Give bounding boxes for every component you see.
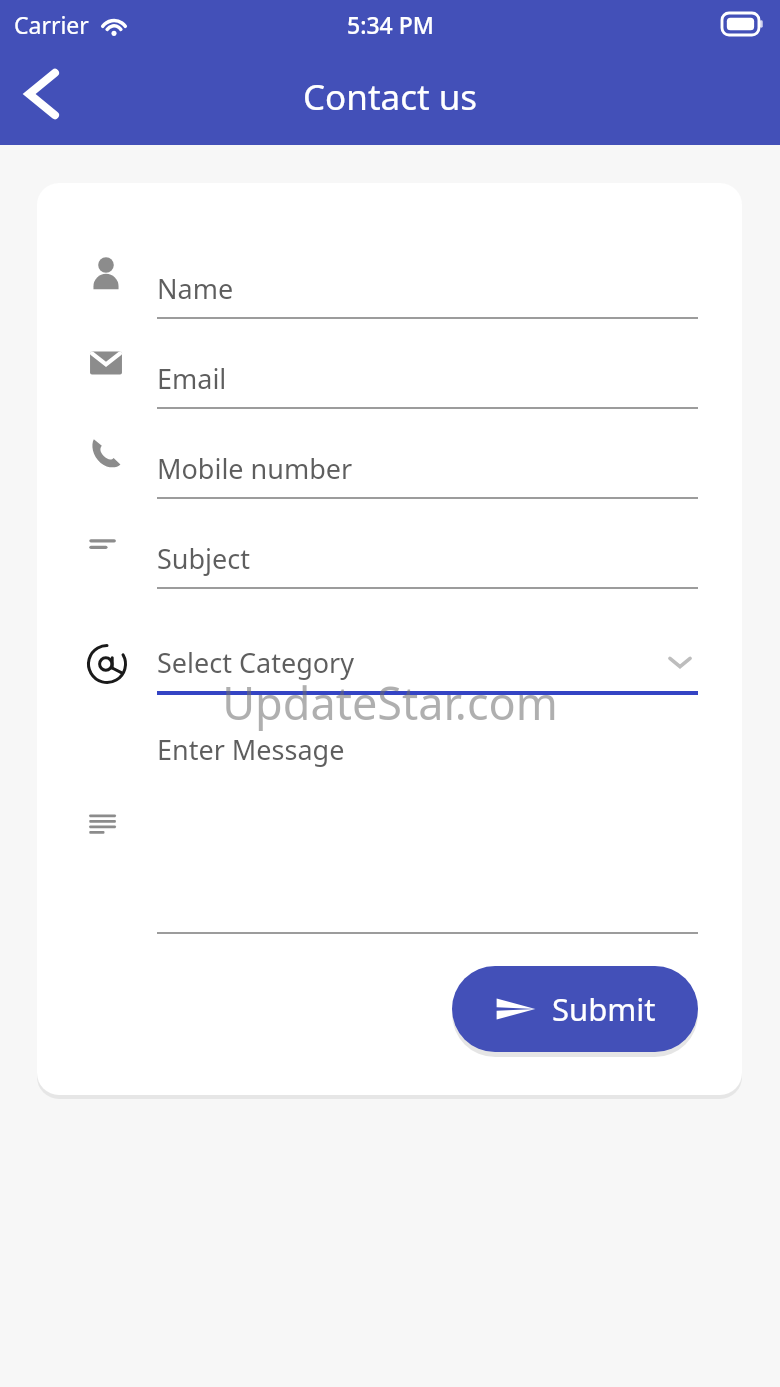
button[interactable]: Mobile number — [157, 432, 698, 504]
staticText: Contact us — [303, 73, 478, 121]
button[interactable]: Email — [157, 342, 698, 414]
staticText: Carrier — [14, 9, 89, 40]
staticText: UpdateStar.com — [0, 672, 780, 733]
button[interactable]: Back — [6, 58, 78, 130]
staticText: Submit — [552, 988, 656, 1030]
button[interactable]: Select Category — [157, 626, 698, 698]
button[interactable]: Name — [157, 252, 698, 324]
staticText: Mobile number — [157, 450, 353, 487]
staticText: Select Category — [157, 644, 355, 681]
staticText: Email — [157, 360, 227, 397]
button[interactable] — [157, 803, 698, 933]
staticText: Name — [157, 270, 234, 307]
staticText: Subject — [157, 540, 251, 577]
staticText: 5:34 PM — [347, 9, 434, 40]
staticText: Enter Message — [157, 731, 345, 768]
button[interactable]: Submit — [452, 966, 698, 1052]
button[interactable]: Subject — [157, 522, 698, 594]
